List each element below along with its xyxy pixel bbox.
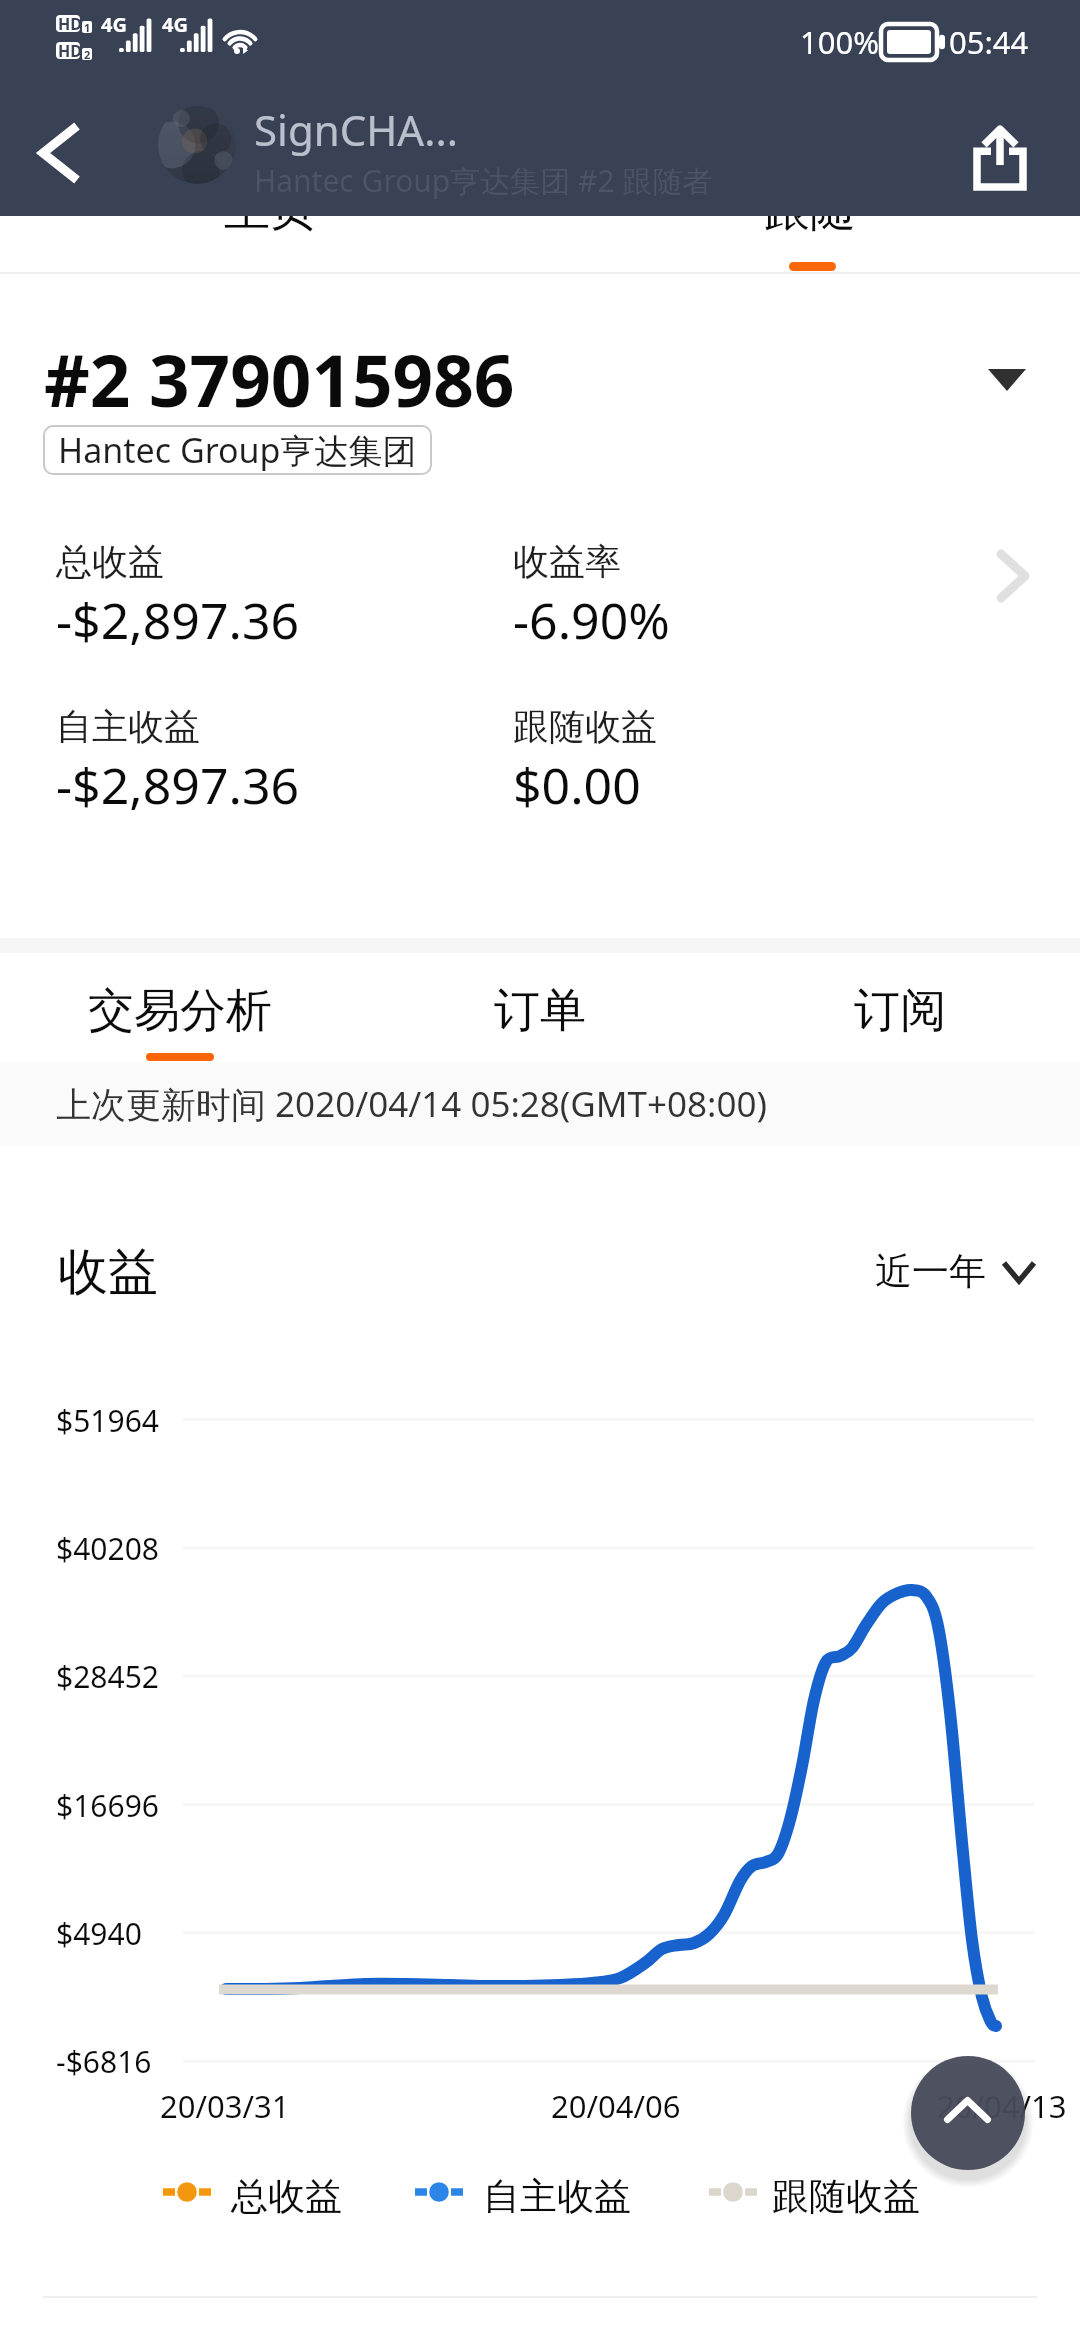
staticText: 05:44 xyxy=(949,21,1029,63)
staticText: 100% xyxy=(800,21,879,63)
staticText: 上次更新时间 2020/04/14 05:28(GMT+08:00) xyxy=(56,1080,768,1128)
button[interactable]: 近一年 xyxy=(875,1248,1034,1295)
staticText: -$2,897.36 xyxy=(56,751,300,819)
staticText: -6.90% xyxy=(513,586,670,654)
staticText: $0.00 xyxy=(513,751,641,819)
staticText: 总收益 xyxy=(231,2173,342,2220)
button[interactable]: Scroll to top xyxy=(911,2056,1025,2170)
staticText: #2 379015986 xyxy=(44,331,515,428)
staticText: 20/04/13 xyxy=(937,2085,1067,2127)
staticText: 收益 xyxy=(58,1241,158,1304)
staticText: 跟随收益 xyxy=(513,704,657,749)
staticText: $51964 xyxy=(56,1400,159,1441)
staticText: 1 xyxy=(84,20,91,35)
staticText: 4G xyxy=(162,11,188,38)
button[interactable]: 订单 xyxy=(360,982,720,1067)
staticText: 近一年 xyxy=(875,1248,986,1295)
staticText: $4940 xyxy=(56,1913,142,1954)
button[interactable]: Back xyxy=(12,105,108,201)
staticText: 自主收益 xyxy=(483,2173,631,2220)
staticText: $16696 xyxy=(56,1785,159,1826)
staticText: 主页 xyxy=(224,181,316,239)
staticText: 跟随收益 xyxy=(772,2173,920,2220)
staticText: 2 xyxy=(84,47,91,62)
staticText: Hantec Group亨达集团 xyxy=(58,427,417,473)
staticText: $40208 xyxy=(56,1528,159,1569)
staticText: 订单 xyxy=(494,982,586,1040)
staticText: 交易分析 xyxy=(88,982,272,1040)
staticText: $28452 xyxy=(56,1656,159,1697)
staticText: -$6816 xyxy=(56,2041,152,2082)
staticText: 总收益 xyxy=(56,539,164,584)
staticText: 收益率 xyxy=(513,539,621,584)
staticText: 4G xyxy=(101,11,127,38)
staticText: 跟随 xyxy=(764,181,856,239)
staticText: SignCHA... xyxy=(254,101,458,158)
staticText: HD xyxy=(58,40,82,62)
staticText: 自主收益 xyxy=(56,704,200,749)
staticText: -$2,897.36 xyxy=(56,586,300,654)
staticText: 20/03/31 xyxy=(160,2085,290,2127)
button[interactable]: Share xyxy=(945,102,1055,212)
button[interactable]: 总收益 xyxy=(0,510,1080,870)
staticText: Hantec Group亨达集团 #2 跟随者 xyxy=(254,160,713,201)
staticText: 订阅 xyxy=(854,982,946,1040)
button[interactable]: 订阅 xyxy=(720,982,1080,1067)
staticText: HD xyxy=(58,13,82,35)
button[interactable]: 交易分析 xyxy=(0,982,360,1067)
staticText: 20/04/06 xyxy=(551,2085,681,2127)
